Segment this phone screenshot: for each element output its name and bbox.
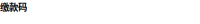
staticText: 缴款码 bbox=[0, 0, 27, 13]
